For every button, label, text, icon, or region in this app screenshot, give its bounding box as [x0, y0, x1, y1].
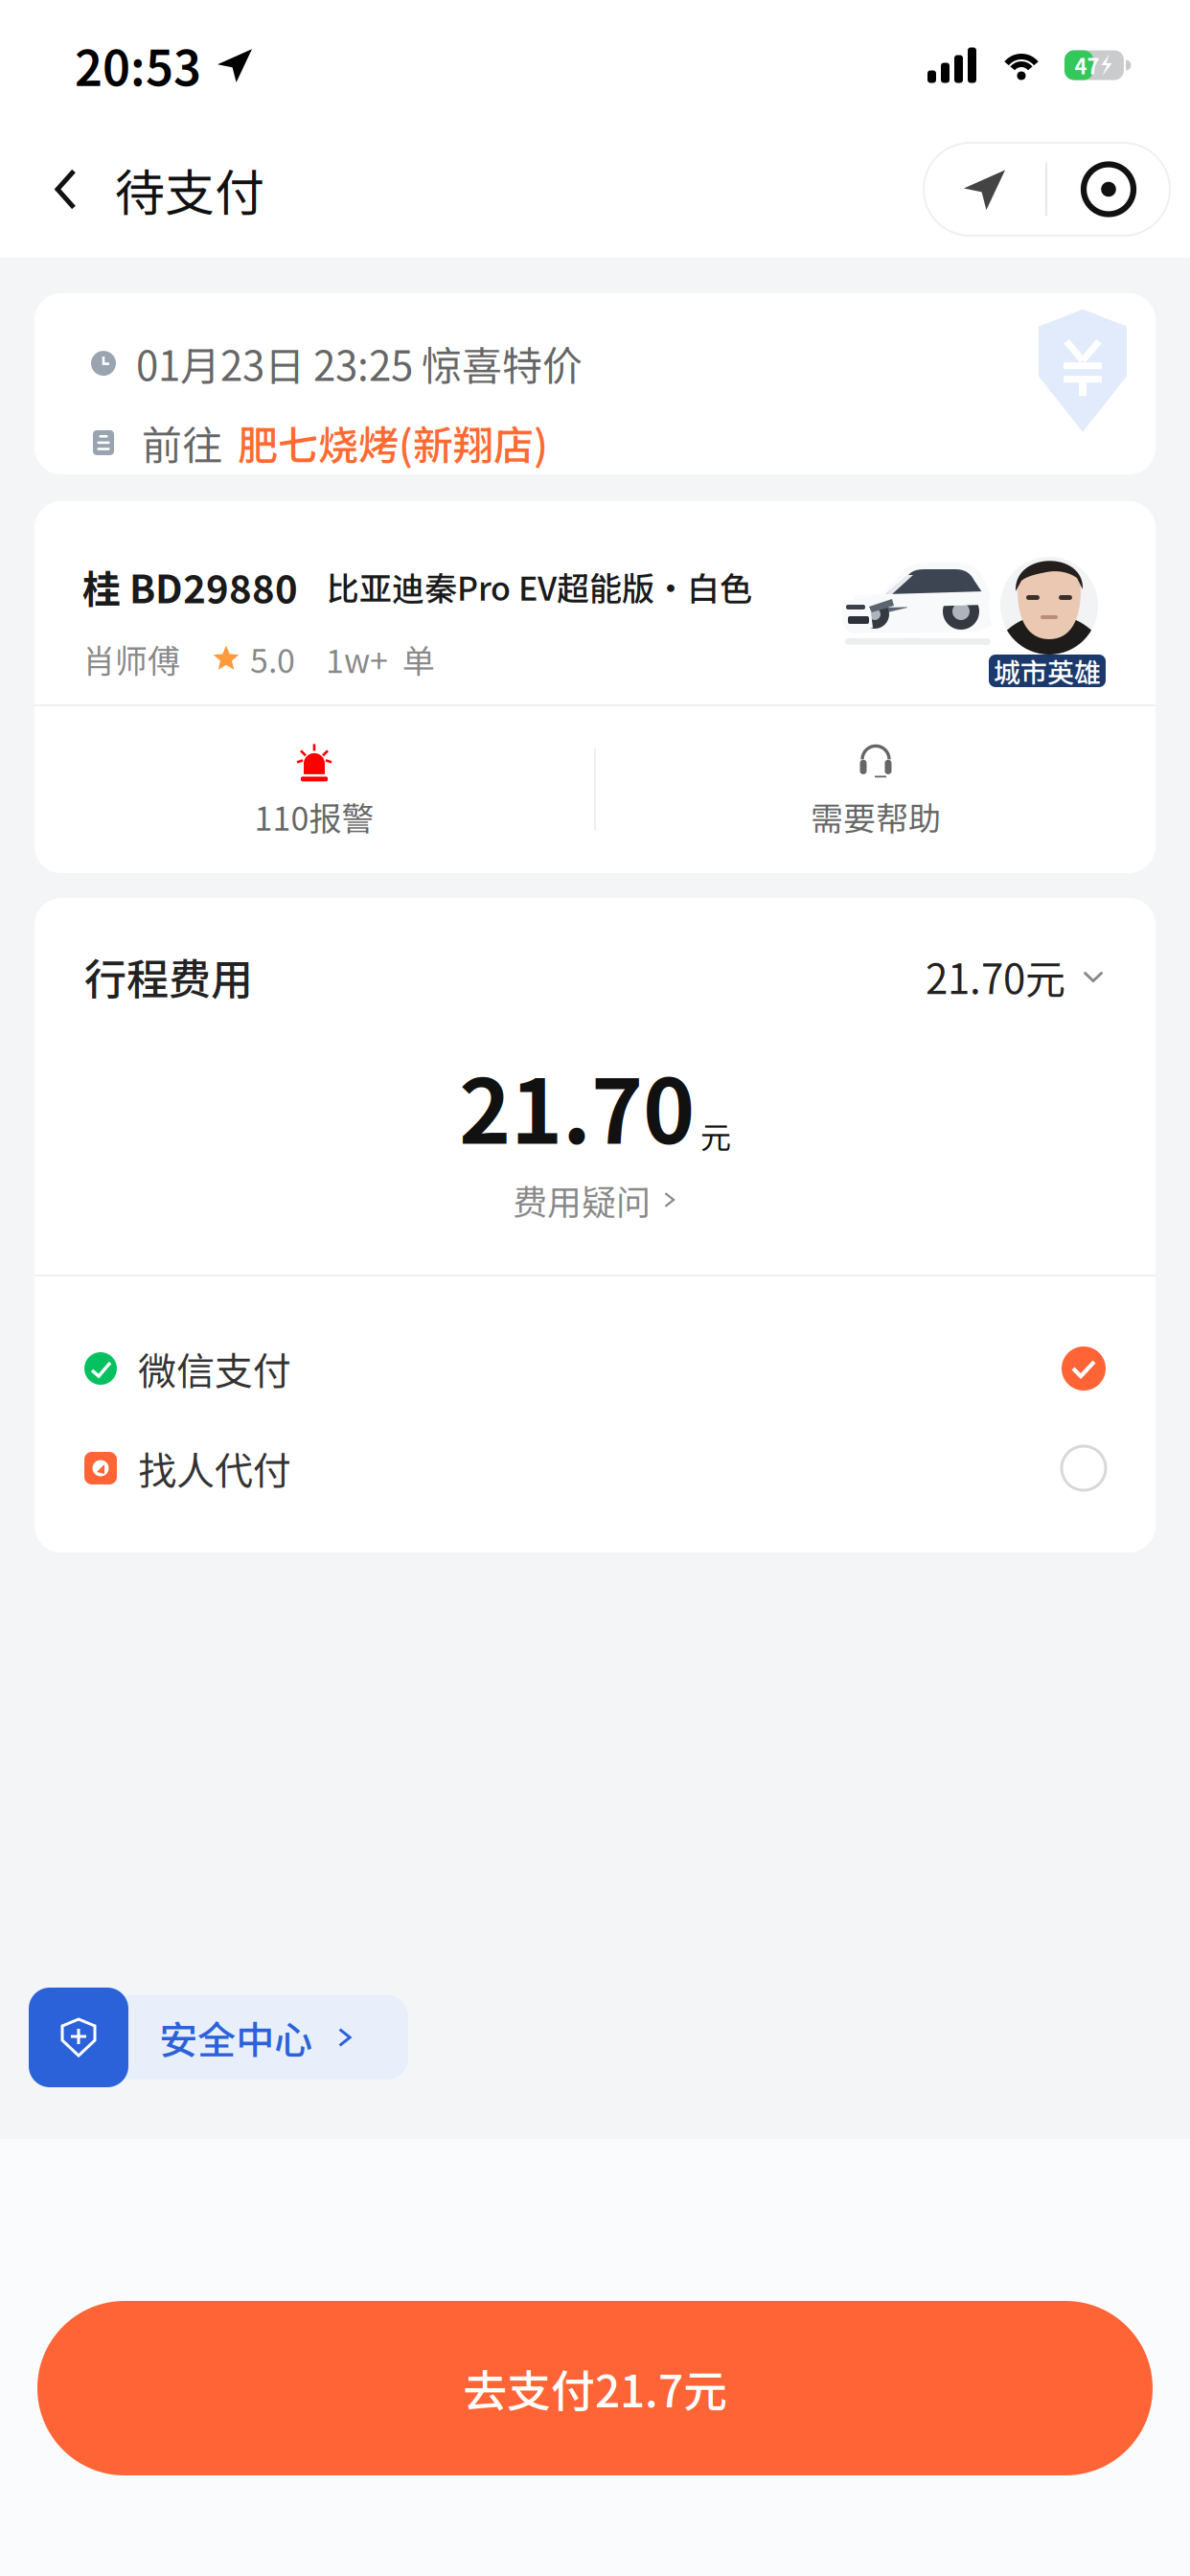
- staticText: 元: [700, 1113, 731, 1158]
- staticText: 城市英雄: [994, 651, 1101, 690]
- staticText: 1w+: [326, 635, 388, 682]
- staticText: 肥七烧烤(新翔店): [238, 414, 548, 472]
- button[interactable]: Navigate and locate: [924, 143, 1170, 236]
- staticText: 单: [402, 635, 435, 682]
- staticText: 行程费用: [84, 946, 253, 1007]
- staticText: 20:53: [75, 30, 201, 100]
- staticText: 去支付21.7元: [463, 2356, 727, 2420]
- staticText: 微信支付: [138, 1341, 291, 1396]
- staticText: 待支付: [115, 153, 264, 225]
- button[interactable]: 去支付21.7元: [0, 2301, 1190, 2475]
- staticText: 安全中心: [159, 2010, 312, 2065]
- staticText: 前往: [142, 414, 222, 472]
- staticText: 比亚迪秦Pro EV超能版·白色: [327, 563, 752, 610]
- button[interactable]: 微信支付: [34, 1319, 1156, 1418]
- staticText: 费用疑问: [513, 1175, 651, 1225]
- staticText: 桂 BD29880: [82, 559, 298, 614]
- button[interactable]: 安全中心: [29, 1988, 393, 2087]
- button[interactable]: 待支付: [0, 143, 287, 236]
- button[interactable]: 找人代付: [34, 1418, 1156, 1518]
- button[interactable]: 21.70元: [926, 947, 1106, 1005]
- button[interactable]: 110报警: [34, 706, 594, 873]
- staticText: 5.0: [250, 635, 295, 682]
- staticText: 47: [1075, 50, 1099, 80]
- staticText: 21.70: [459, 1041, 695, 1169]
- staticText: 21.70元: [926, 947, 1065, 1005]
- button[interactable]: 费用疑问: [513, 1175, 677, 1225]
- staticText: 01月23日 23:25 惊喜特价: [136, 334, 583, 392]
- button[interactable]: 需要帮助: [596, 706, 1156, 873]
- staticText: 肖师傅: [82, 635, 180, 682]
- staticText: 110报警: [254, 793, 374, 840]
- staticText: 需要帮助: [811, 793, 941, 840]
- staticText: 找人代付: [138, 1440, 291, 1496]
